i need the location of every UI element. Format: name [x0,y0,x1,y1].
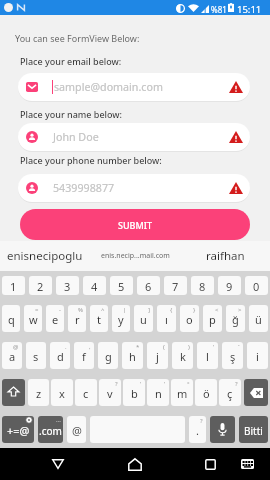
button[interactable]: f [74,342,94,369]
staticText: > [238,306,242,314]
button[interactable]: a [2,342,22,369]
staticText: , [89,343,91,351]
staticText: < [215,306,219,314]
staticText: t [97,312,101,327]
button[interactable]: p [203,305,222,332]
button[interactable]: Recent apps [194,448,226,480]
button[interactable]: q [2,305,20,332]
staticText: q [8,312,15,327]
other: Shift [8,387,19,398]
staticText: ş [230,349,236,364]
button[interactable]: SUBMIT [20,209,250,240]
button[interactable]: r [68,305,86,332]
button[interactable]: raifhan [180,241,270,271]
button[interactable]: n [147,379,169,406]
button[interactable]: v [99,379,121,406]
staticText: ] [148,306,150,314]
button[interactable]: u [134,305,153,332]
staticText: { [170,306,173,314]
staticText: 4 [91,279,98,294]
button[interactable]: 5 [110,276,133,295]
button[interactable]: e [46,305,64,332]
staticText: r [75,312,80,327]
button[interactable]: z [28,379,49,406]
button[interactable]: l [197,342,218,369]
staticText: 15:11 [237,3,262,16]
button[interactable]: j [147,342,168,369]
button[interactable]: Home [118,448,152,480]
button[interactable]: John Doe [18,123,250,151]
staticText: ğ [232,312,239,327]
button[interactable]: Voice input [210,416,235,443]
button[interactable]: w [24,305,42,332]
staticText: - [59,306,61,314]
staticText: enis.necip...mail.com [101,251,170,261]
button[interactable]: +=@ [2,416,34,443]
button[interactable]: o [180,305,199,332]
button[interactable]: h [122,342,143,369]
button[interactable]: k [172,342,193,369]
staticText: ` [238,343,240,351]
staticText: h [129,349,136,364]
staticText: w [29,312,38,327]
button[interactable]: 8 [191,276,214,295]
button[interactable]: x [51,379,73,406]
button[interactable]: 4 [83,276,106,295]
staticText: j [156,349,159,364]
button[interactable]: t [90,305,108,332]
button[interactable]: i [247,342,268,369]
button[interactable]: ı [157,305,176,332]
button[interactable]: .com [38,416,63,443]
button[interactable]: 9 [218,276,241,295]
button[interactable]: Switch keyboard [233,448,261,480]
staticText: f [82,349,86,364]
staticText: ° [187,380,190,388]
button[interactable]: ç [219,379,241,406]
button[interactable]: ğ [226,305,245,332]
button[interactable]: Backspace [244,379,268,406]
button[interactable]: m [171,379,193,406]
staticText: You can see FormView Below: [15,32,140,44]
button[interactable]: Shift [2,379,25,406]
staticText: e [52,312,59,327]
button[interactable]: . [189,416,206,443]
staticText: ... [56,416,61,424]
staticText: k [180,349,186,364]
button[interactable]: 6 [137,276,160,295]
staticText: y [118,312,124,327]
staticText: 8 [199,279,206,294]
button[interactable]: 2 [29,276,52,295]
button[interactable]: sample@domain.com [18,73,250,101]
button[interactable]: ü [249,305,268,332]
button[interactable]: Bitti [239,416,268,443]
staticText: ? [200,417,203,425]
staticText: Place your name below: [20,108,123,120]
button[interactable]: enisnecipoglu [0,241,90,271]
button[interactable]: s [26,342,46,369]
staticText: 3 [64,279,71,294]
button[interactable]: 3 [56,276,79,295]
button[interactable]: b [123,379,145,406]
staticText: 2 [37,279,44,294]
button[interactable]: Back [41,448,74,480]
staticText: 5439998877 [53,181,115,196]
button[interactable]: 0 [245,276,268,295]
button[interactable]: c [75,379,97,406]
staticText: Bitti [244,424,263,438]
staticText: raifhan [206,248,245,264]
button[interactable]: 5439998877 [18,174,250,202]
staticText: z [36,386,42,401]
staticText: ? [115,380,118,388]
staticText: enisnecipoglu [7,248,83,264]
button[interactable]: @ [67,416,86,443]
button[interactable]: 1 [2,276,25,295]
button[interactable]: y [112,305,130,332]
button[interactable]: d [50,342,70,369]
button[interactable]: ş [222,342,243,369]
button[interactable]: 7 [164,276,187,295]
button[interactable]: ö [195,379,217,406]
staticText: u [140,312,147,327]
button[interactable]: enis.necip...mail.com [90,241,180,271]
button[interactable]: g [98,342,118,369]
